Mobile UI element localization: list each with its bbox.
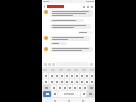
button[interactable]: Key	[55, 73, 59, 78]
button[interactable]	[50, 10, 93, 17]
button[interactable]: Key	[49, 73, 54, 78]
button[interactable]: Key	[78, 85, 82, 90]
button[interactable]: Action	[82, 5, 85, 8]
button[interactable]: Key	[52, 91, 57, 97]
button[interactable]: Contact avatar	[44, 47, 48, 51]
button[interactable]: Key	[90, 79, 94, 84]
button[interactable]: Key	[80, 73, 84, 78]
button[interactable]: Key	[70, 79, 74, 84]
button[interactable]	[50, 42, 67, 45]
button[interactable]: Attachment	[48, 63, 51, 66]
button[interactable]: Key	[49, 79, 54, 84]
button[interactable]: Key	[51, 85, 56, 90]
button[interactable]: Attachment	[44, 63, 47, 66]
button[interactable]: Key	[55, 79, 59, 84]
button[interactable]: Key	[90, 73, 94, 78]
button[interactable]: Key	[57, 85, 62, 90]
button[interactable]: Key	[58, 91, 80, 97]
button[interactable]: Key	[65, 79, 69, 84]
button[interactable]: Key	[87, 91, 94, 97]
button[interactable]: Send	[90, 63, 93, 66]
button[interactable]: Key	[88, 85, 94, 90]
button[interactable]: Contact avatar	[44, 36, 48, 40]
button[interactable]	[50, 19, 84, 22]
button[interactable]: Key	[43, 79, 48, 84]
button[interactable]: Key	[85, 79, 89, 84]
button[interactable]: Key	[70, 73, 74, 78]
button[interactable]: Key	[83, 85, 87, 90]
button[interactable]: Key	[43, 91, 51, 97]
button[interactable]: Key	[65, 73, 69, 78]
button[interactable]: Key	[60, 73, 64, 78]
button[interactable]: Contact avatar	[44, 10, 48, 14]
button[interactable]	[77, 31, 93, 34]
button[interactable]: Key	[43, 73, 48, 78]
button[interactable]: Key	[43, 85, 50, 90]
button[interactable]	[50, 24, 91, 29]
button[interactable]: Key	[60, 79, 64, 84]
button[interactable]	[50, 47, 93, 52]
button[interactable]: Key	[73, 85, 77, 90]
button[interactable]: Action	[90, 5, 93, 8]
button[interactable]: Action	[86, 5, 89, 8]
button[interactable]: Key	[75, 73, 79, 78]
button[interactable]: Back	[43, 5, 46, 8]
button[interactable]	[50, 36, 90, 41]
button[interactable]: Key	[80, 79, 84, 84]
button[interactable]: Key	[63, 85, 67, 90]
button[interactable]: Key	[75, 79, 79, 84]
button[interactable]: Key	[68, 85, 72, 90]
button[interactable]: Back	[53, 99, 56, 102]
button[interactable]: Recents	[81, 99, 84, 102]
button[interactable]: Key	[85, 73, 89, 78]
button[interactable]: Home	[67, 99, 70, 102]
button[interactable]: Key	[81, 91, 86, 97]
button[interactable]: Attachment	[52, 63, 55, 66]
